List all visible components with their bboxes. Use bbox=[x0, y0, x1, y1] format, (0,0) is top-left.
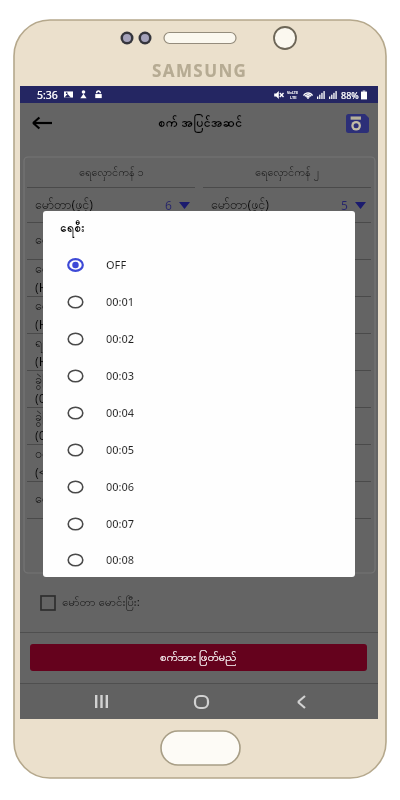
staticText: (<) bbox=[35, 464, 50, 481]
staticText: ခွဲခြား bbox=[35, 372, 60, 390]
staticText: (H) bbox=[35, 279, 52, 296]
button[interactable]: Recents bbox=[82, 684, 120, 719]
staticText: 5:36 bbox=[37, 88, 58, 102]
staticText: 00:08 bbox=[106, 552, 135, 567]
staticText: ရေနည်း bbox=[35, 261, 71, 279]
staticText: (H) bbox=[35, 353, 52, 370]
staticText: 00:06 bbox=[106, 479, 135, 494]
button[interactable]: 00:02 bbox=[43, 320, 355, 357]
button[interactable]: 00:06 bbox=[43, 468, 355, 505]
staticText: စက်အား ဖြတ်မည် bbox=[160, 649, 237, 667]
staticText: 5 bbox=[341, 197, 348, 213]
staticText: မော်တာ မောင်းပြီး: bbox=[62, 594, 140, 612]
button[interactable]: မော်တာ မောင်းပြီး: bbox=[41, 573, 378, 632]
staticText: ရပ်နား bbox=[35, 335, 65, 353]
staticText: SAMSUNG bbox=[152, 59, 248, 82]
staticText: ရေစီး bbox=[35, 491, 60, 509]
button[interactable]: 00:05 bbox=[43, 431, 355, 468]
staticText: 88% bbox=[341, 89, 359, 101]
staticText: ဝင်ရန် bbox=[35, 446, 63, 464]
staticText: LTE bbox=[290, 95, 297, 100]
staticText: မော်တာ(ဖွင့်) bbox=[211, 196, 269, 215]
staticText: စက် အပြင်အဆင် bbox=[158, 113, 243, 133]
button[interactable]: 00:03 bbox=[43, 357, 355, 394]
staticText: ရေလှောင်ကန် ၂ bbox=[255, 164, 319, 181]
staticText: ရေများ bbox=[35, 298, 67, 316]
staticText: VoLTE bbox=[287, 90, 299, 95]
staticText: 00:01 bbox=[106, 294, 135, 309]
staticText: ရေလှောင်ကန် ၁ bbox=[79, 164, 144, 181]
button[interactable]: 00:01 bbox=[43, 283, 355, 320]
staticText: 00:02 bbox=[106, 331, 135, 346]
button[interactable]: 00:08 bbox=[43, 542, 355, 577]
staticText: 00:03 bbox=[106, 368, 135, 383]
button[interactable]: 00:07 bbox=[43, 505, 355, 542]
staticText: (H) bbox=[35, 316, 52, 333]
staticText: ခွဲခြား bbox=[35, 409, 60, 427]
staticText: OFF bbox=[106, 257, 127, 272]
button[interactable]: ရေလှောင်ကန် ၁ bbox=[27, 157, 195, 187]
staticText: မော်တာ(ဖွင့်) bbox=[35, 196, 93, 215]
button[interactable]: Back bbox=[282, 684, 320, 719]
staticText: 00:05 bbox=[106, 442, 135, 457]
button[interactable]: 00:04 bbox=[43, 394, 355, 431]
button[interactable]: Back bbox=[20, 103, 64, 143]
staticText: (0) bbox=[35, 427, 50, 444]
staticText: (0) bbox=[35, 390, 50, 407]
staticText: ရေများ bbox=[35, 232, 67, 250]
button[interactable]: Home bbox=[182, 684, 220, 719]
button[interactable]: Save bbox=[336, 103, 378, 143]
button[interactable]: OFF bbox=[43, 246, 355, 283]
staticText: 6 bbox=[165, 197, 172, 213]
staticText: ရေစီး bbox=[60, 220, 85, 238]
button[interactable]: စက်အား ဖြတ်မည် bbox=[30, 644, 367, 671]
staticText: 00:07 bbox=[106, 516, 135, 531]
staticText: 00:04 bbox=[106, 405, 135, 420]
button[interactable]: ရေလှောင်ကန် ၂ bbox=[203, 157, 371, 187]
